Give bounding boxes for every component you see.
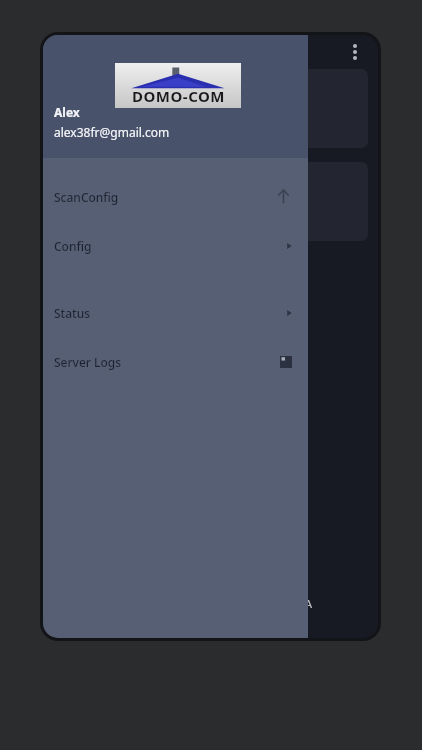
staticText: ScanConfig: [54, 189, 119, 205]
staticText: alex38fr@gmail.com: [54, 124, 170, 140]
staticText: Config: [54, 238, 92, 254]
staticText: Alex: [54, 104, 80, 120]
button[interactable]: [53, 69, 368, 148]
button[interactable]: Status: [43, 288, 308, 337]
staticText: A: [305, 596, 313, 611]
button[interactable]: ScanConfig: [43, 172, 308, 221]
button[interactable]: More options: [342, 37, 368, 67]
staticText: DOMO-COM: [132, 86, 225, 106]
button[interactable]: [53, 162, 368, 241]
staticText: Status: [54, 305, 91, 321]
button[interactable]: Server Logs: [43, 337, 308, 386]
button[interactable]: Config: [43, 221, 308, 270]
staticText: Server Logs: [54, 354, 121, 370]
